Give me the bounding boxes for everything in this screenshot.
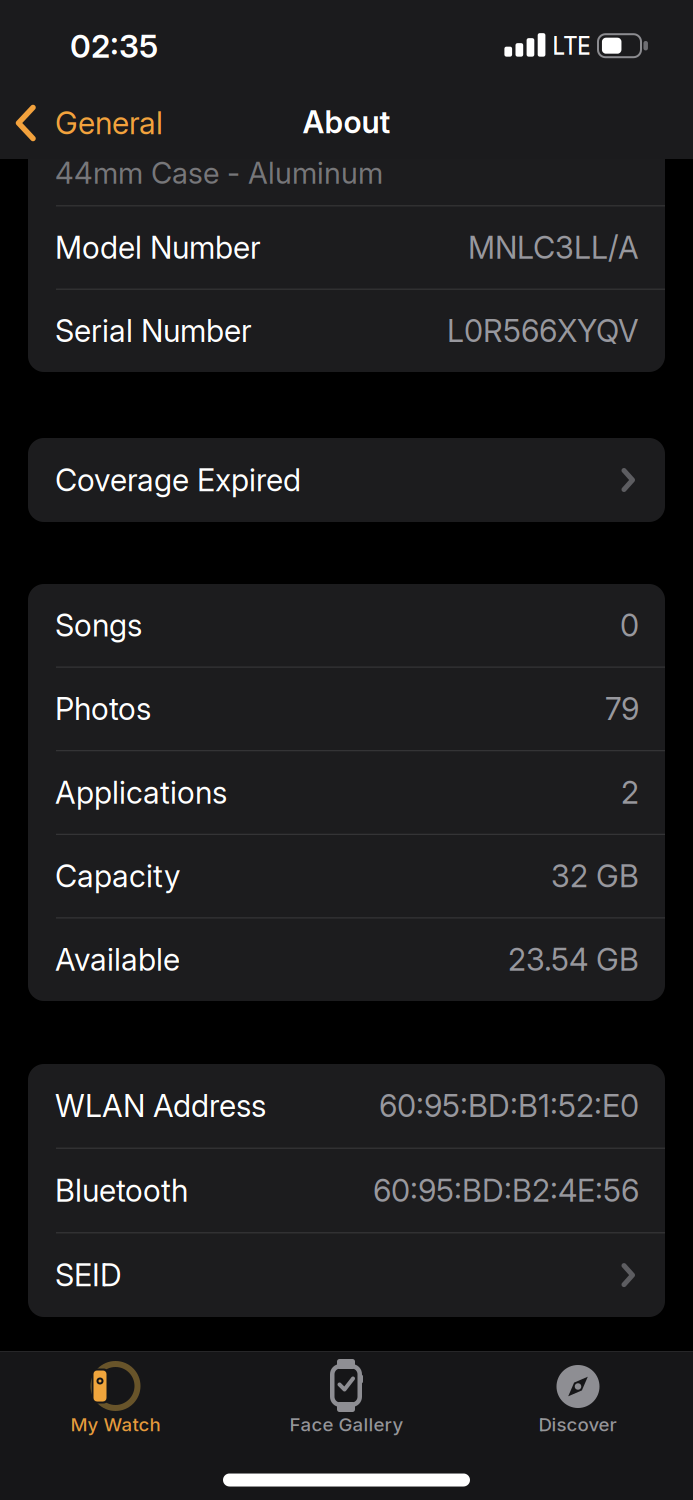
staticText: Face Gallery: [289, 1413, 403, 1435]
button[interactable]: Discover: [462, 1351, 693, 1500]
staticText: 02:35: [70, 27, 158, 65]
staticText: 60:95:BD:B1:52:E0: [379, 1088, 639, 1124]
staticText: Serial Number: [55, 313, 252, 349]
staticText: Bluetooth: [55, 1172, 188, 1209]
staticText: 60:95:BD:B2:4E:56: [373, 1172, 639, 1209]
staticText: 0: [620, 607, 639, 643]
staticText: SEID: [55, 1257, 122, 1293]
staticText: MNLC3LL/A: [468, 229, 639, 266]
staticText: My Watch: [70, 1413, 160, 1435]
staticText: General: [55, 105, 163, 141]
staticText: 23.54 GB: [508, 942, 639, 978]
staticText: Discover: [538, 1413, 616, 1435]
button[interactable]: Coverage Expired: [28, 438, 665, 522]
staticText: Photos: [55, 691, 151, 727]
button[interactable]: My Watch: [0, 1351, 231, 1500]
staticText: About: [302, 104, 390, 140]
staticText: 2: [621, 774, 639, 811]
staticText: 79: [605, 691, 639, 727]
staticText: 44mm Case - Aluminum: [55, 156, 383, 190]
staticText: Coverage Expired: [55, 462, 301, 498]
staticText: Songs: [55, 607, 142, 643]
staticText: Model Number: [55, 229, 261, 266]
staticText: L0R566XYQV: [447, 313, 639, 349]
staticText: Available: [55, 942, 180, 978]
button[interactable]: Face Gallery: [231, 1351, 462, 1500]
staticText: WLAN Address: [55, 1088, 266, 1124]
button[interactable]: SEID: [28, 1233, 665, 1317]
staticText: 32 GB: [551, 858, 639, 894]
staticText: LTE: [550, 31, 593, 60]
staticText: Capacity: [55, 858, 180, 894]
button[interactable]: General: [16, 95, 163, 151]
staticText: Applications: [55, 774, 227, 811]
